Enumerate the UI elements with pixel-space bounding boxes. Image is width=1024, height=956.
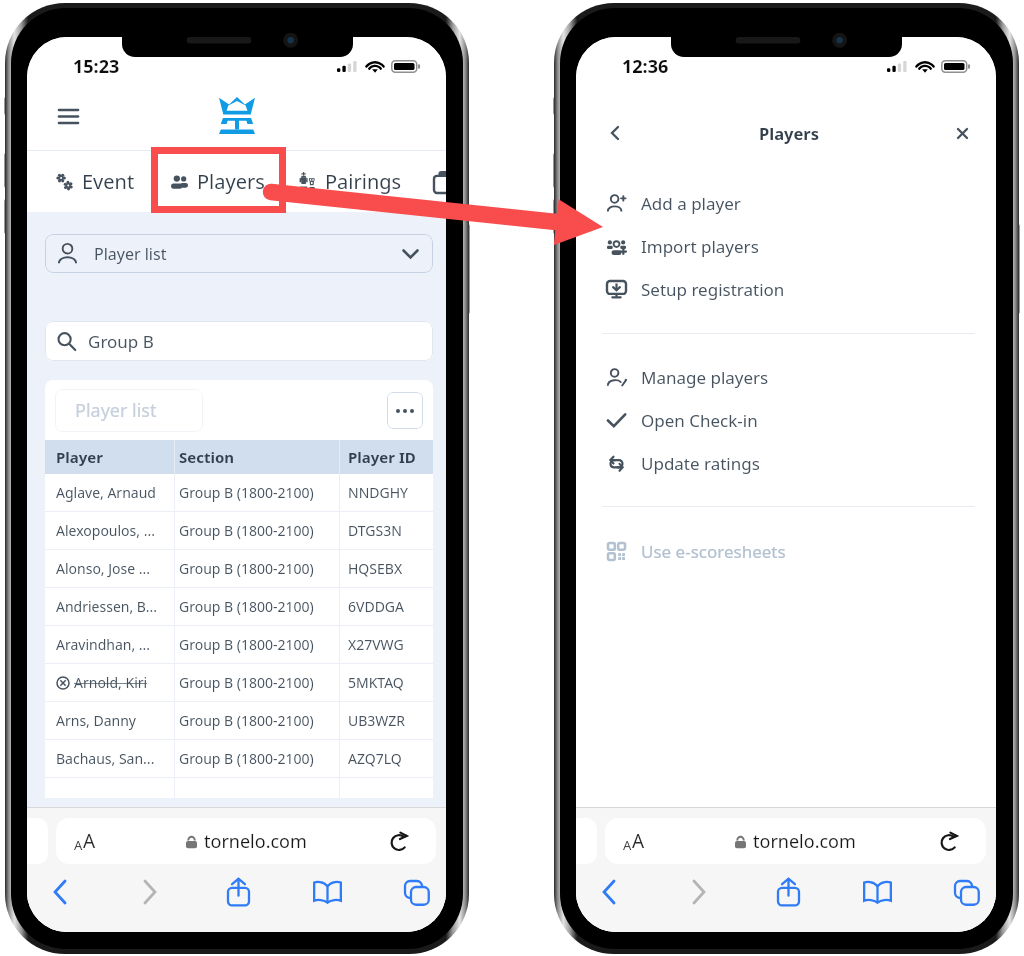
staticText: Group B (1800-2100): [179, 521, 314, 540]
staticText: Setup registration: [641, 278, 785, 301]
button[interactable]: Use e-scoresheets: [576, 530, 996, 573]
button[interactable]: Arnold, Kiri: [45, 664, 433, 701]
button[interactable]: Bachaus, San...: [45, 740, 433, 777]
button[interactable]: A: [605, 818, 986, 864]
button[interactable]: Close: [946, 117, 978, 149]
staticText: 12:36: [622, 54, 669, 79]
button[interactable]: Back: [585, 868, 633, 916]
staticText: Arns, Danny: [56, 711, 136, 730]
button[interactable]: Tabs: [392, 868, 440, 916]
button[interactable]: Reload: [936, 827, 964, 855]
staticText: Player ID: [348, 447, 416, 467]
button[interactable]: Update ratings: [576, 442, 996, 485]
button[interactable]: Tabs: [942, 868, 990, 916]
button[interactable]: Players: [170, 151, 265, 212]
staticText: Manage players: [641, 366, 769, 389]
staticText: A: [74, 836, 83, 854]
button[interactable]: Forward: [125, 868, 173, 916]
staticText: Players: [759, 122, 819, 144]
button[interactable]: Add a player: [576, 182, 996, 225]
staticText: tornelo.com: [204, 829, 307, 854]
button[interactable]: Open Check-in: [576, 399, 996, 442]
staticText: Pairings: [325, 168, 402, 195]
button[interactable]: Share: [764, 868, 812, 916]
button[interactable]: Aravindhan, ...: [45, 626, 433, 663]
button[interactable]: Bookmarks: [303, 868, 351, 916]
staticText: A: [632, 828, 645, 854]
staticText: Group B (1800-2100): [179, 749, 314, 768]
button[interactable]: More options: [387, 392, 423, 429]
button[interactable]: Setup registration: [576, 268, 996, 311]
staticText: Group B (1800-2100): [179, 635, 314, 654]
staticText: 6VDDGA: [348, 597, 404, 616]
staticText: AZQ7LQ: [348, 749, 402, 768]
staticText: Aravindhan, ...: [56, 635, 151, 654]
button[interactable]: Reload: [386, 827, 414, 855]
button[interactable]: Manage players: [576, 356, 996, 399]
button[interactable]: Back: [599, 117, 631, 149]
staticText: Arnold, Kiri: [74, 673, 148, 692]
staticText: NNDGHY: [348, 483, 408, 502]
staticText: Update ratings: [641, 452, 760, 475]
staticText: Players: [197, 168, 265, 195]
button[interactable]: Pairings: [297, 151, 402, 212]
staticText: X27VWG: [348, 635, 404, 654]
button[interactable]: Player list: [45, 234, 433, 273]
button[interactable]: Bookmarks: [853, 868, 901, 916]
staticText: DTGS3N: [348, 521, 402, 540]
staticText: Player list: [75, 398, 157, 423]
staticText: Group B (1800-2100): [179, 483, 314, 502]
staticText: Player: [56, 447, 103, 467]
button[interactable]: Import players: [576, 225, 996, 268]
button[interactable]: Share: [214, 868, 262, 916]
button[interactable]: Group B: [45, 321, 433, 361]
staticText: Alexopoulos, ...: [56, 521, 155, 540]
button[interactable]: Aglave, Arnaud: [45, 474, 433, 511]
button[interactable]: Menu: [53, 105, 83, 127]
staticText: Group B (1800-2100): [179, 673, 314, 692]
button[interactable]: Andriessen, B...: [45, 588, 433, 625]
staticText: Use e-scoresheets: [641, 540, 786, 563]
staticText: Import players: [641, 235, 759, 258]
button[interactable]: A: [56, 818, 436, 864]
staticText: Event: [82, 168, 135, 195]
staticText: Add a player: [641, 192, 741, 215]
staticText: Alonso, Jose ...: [56, 559, 151, 578]
staticText: Andriessen, B...: [56, 597, 158, 616]
staticText: 5MKTAQ: [348, 673, 404, 692]
staticText: Bachaus, San...: [56, 749, 155, 768]
button[interactable]: Event: [56, 151, 135, 212]
button[interactable]: Arns, Danny: [45, 702, 433, 739]
staticText: Player list: [94, 243, 167, 265]
button[interactable]: Forward: [674, 868, 722, 916]
staticText: Section: [179, 447, 235, 467]
staticText: Group B (1800-2100): [179, 711, 314, 730]
staticText: Open Check-in: [641, 409, 758, 432]
staticText: 15:23: [73, 54, 120, 79]
staticText: Group B (1800-2100): [179, 597, 314, 616]
staticText: Group B: [88, 330, 154, 353]
staticText: Group B (1800-2100): [179, 559, 314, 578]
staticText: tornelo.com: [753, 829, 856, 854]
staticText: A: [83, 828, 96, 854]
staticText: Aglave, Arnaud: [56, 483, 156, 502]
button[interactable]: Back: [36, 868, 84, 916]
button[interactable]: Alonso, Jose ...: [45, 550, 433, 587]
staticText: A: [623, 836, 632, 854]
staticText: UB3WZR: [348, 711, 406, 730]
button[interactable]: Alexopoulos, ...: [45, 512, 433, 549]
staticText: HQSEBX: [348, 559, 403, 578]
